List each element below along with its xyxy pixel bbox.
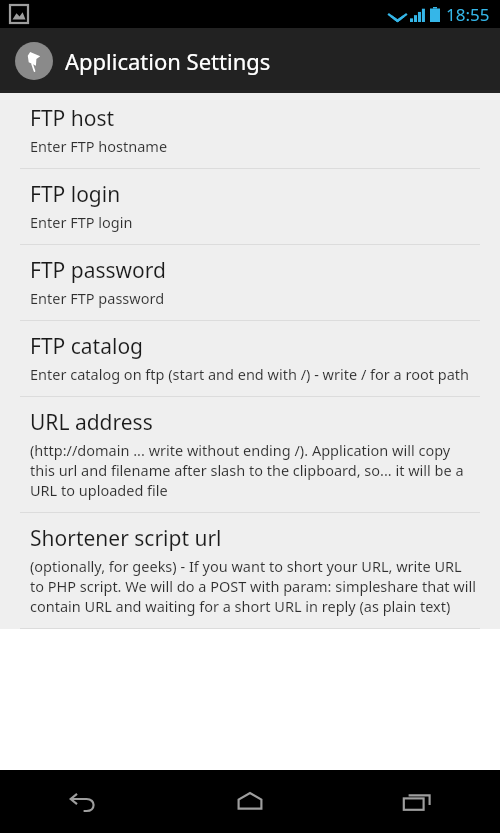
button[interactable]: Home (166, 770, 333, 833)
staticText: Enter FTP login (30, 212, 133, 232)
button[interactable]: URL address (0, 397, 500, 513)
button[interactable]: Shortener script url (0, 513, 500, 629)
button[interactable]: FTP host (0, 93, 500, 169)
button[interactable]: Application Settings (0, 28, 500, 93)
button[interactable]: FTP password (0, 245, 500, 321)
staticText: (optionally, for geeks) - If you want to… (30, 556, 476, 616)
staticText: URL address (30, 408, 153, 437)
button[interactable]: FTP login (0, 169, 500, 245)
staticText: FTP login (30, 180, 121, 209)
button[interactable]: Back (0, 770, 166, 833)
staticText: Enter FTP password (30, 288, 165, 308)
button[interactable]: Recent apps (333, 770, 500, 833)
staticText: FTP password (30, 256, 166, 285)
staticText: Enter FTP hostname (30, 136, 168, 156)
staticText: 18:55 (446, 3, 490, 26)
staticText: Enter catalog on ftp (start and end with… (30, 364, 469, 384)
staticText: FTP host (30, 104, 115, 133)
staticText: (http://domain ... write without ending … (30, 440, 476, 500)
button[interactable]: FTP catalog (0, 321, 500, 397)
staticText: Shortener script url (30, 524, 222, 553)
staticText: Application Settings (65, 46, 271, 76)
staticText: FTP catalog (30, 332, 144, 361)
